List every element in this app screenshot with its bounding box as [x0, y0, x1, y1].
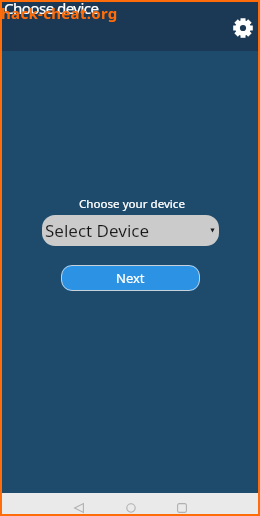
button[interactable]: Back — [64, 493, 94, 514]
button[interactable]: Settings — [233, 18, 253, 38]
staticText: Choose your device — [79, 196, 185, 212]
button[interactable]: Home — [116, 493, 146, 514]
button[interactable]: Recent apps — [167, 493, 197, 514]
staticText: Next — [116, 269, 145, 287]
button[interactable]: Next — [61, 265, 200, 291]
staticText: hack-cheat.org — [1, 3, 118, 23]
staticText: Select Device — [45, 219, 150, 242]
button[interactable]: Select Device — [42, 215, 219, 246]
staticText: Choose device — [4, 0, 99, 19]
